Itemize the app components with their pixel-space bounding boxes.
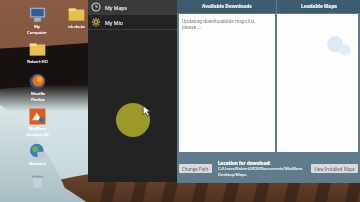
button[interactable]: MioMore Desktop 02 bbox=[26, 108, 49, 137]
staticText: Robert HD bbox=[27, 59, 48, 65]
button[interactable]: Available Downloads bbox=[177, 0, 276, 13]
button[interactable]: nb do-to bbox=[68, 6, 85, 30]
staticText: Loadable Maps bbox=[301, 3, 337, 10]
button[interactable]: Mozilla Firefox bbox=[29, 73, 46, 102]
staticText: My Mio bbox=[105, 19, 123, 26]
button[interactable]: My Computer bbox=[27, 6, 47, 35]
staticText: Change Path bbox=[182, 166, 209, 172]
staticText: My Maps bbox=[105, 4, 127, 11]
staticText: nb do-to bbox=[68, 24, 85, 30]
staticText: Network bbox=[29, 161, 46, 167]
button[interactable]: My Mio bbox=[88, 15, 177, 29]
button[interactable]: My Maps bbox=[88, 0, 177, 14]
button[interactable]: Network bbox=[29, 143, 46, 167]
button[interactable]: View Installed Maps bbox=[311, 164, 358, 173]
staticText: Mozilla Firefox bbox=[31, 91, 45, 102]
button[interactable]: Updating downloadable maps list, please … bbox=[179, 14, 275, 152]
button[interactable] bbox=[277, 14, 358, 152]
button[interactable]: Robert HD bbox=[27, 41, 48, 65]
button[interactable]: Map globe bbox=[116, 103, 150, 137]
staticText: My Computer bbox=[27, 24, 47, 35]
staticText: MioMore Desktop 02 bbox=[26, 126, 49, 137]
button[interactable]: Loadable Maps bbox=[277, 0, 360, 13]
staticText: Updating downloadable maps list, please … bbox=[182, 18, 275, 30]
button[interactable]: Change Path bbox=[179, 164, 212, 173]
staticText: C:/Users/Robert2002/Documents/MioMore De… bbox=[218, 166, 303, 177]
staticText: Available Downloads bbox=[202, 3, 252, 10]
staticText: Location for download: bbox=[218, 160, 271, 166]
button[interactable] bbox=[29, 173, 46, 190]
staticText: View Installed Maps bbox=[314, 166, 355, 172]
